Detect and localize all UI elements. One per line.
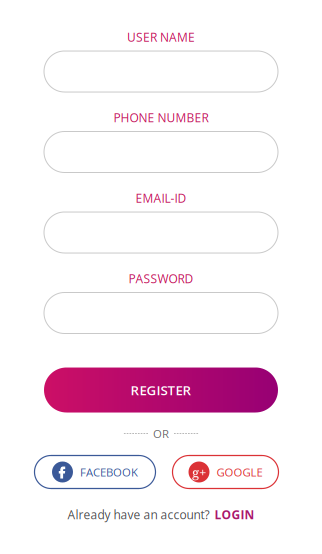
button[interactable]: REGISTER bbox=[44, 367, 278, 412]
button[interactable]: Already have an account? bbox=[67, 506, 254, 522]
button[interactable]: g+ bbox=[172, 455, 278, 488]
staticText: OR bbox=[153, 426, 169, 441]
staticText: REGISTER bbox=[130, 381, 191, 399]
staticText: GOOGLE bbox=[216, 464, 262, 480]
staticText: EMAIL-ID bbox=[135, 190, 186, 206]
staticText: USER NAME bbox=[127, 29, 195, 45]
staticText: FACEBOOK bbox=[80, 464, 138, 480]
staticText: g+ bbox=[192, 463, 206, 481]
staticText: PASSWORD bbox=[128, 270, 193, 287]
button[interactable]: FACEBOOK bbox=[34, 455, 155, 488]
staticText: Already have an account? bbox=[67, 506, 209, 523]
staticText: LOGIN bbox=[214, 506, 254, 523]
staticText: PHONE NUMBER bbox=[113, 109, 208, 126]
